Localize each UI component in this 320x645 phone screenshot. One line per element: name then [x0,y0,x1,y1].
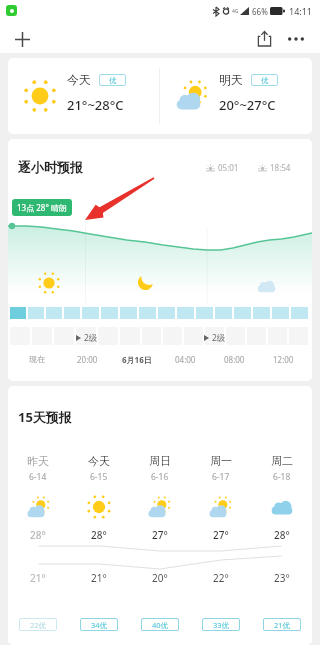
staticText: 22° [213,571,229,585]
staticText: 14:11 [289,5,313,17]
button[interactable]: Add city [9,26,35,52]
button[interactable]: Share [251,25,277,51]
staticText: 28° [91,528,107,542]
staticText: 6-17 [212,471,230,483]
staticText: 明天 [219,72,243,87]
staticText: 2级 [212,332,226,344]
staticText: 21°~28°C [67,96,124,114]
staticText: 6-15 [90,471,108,483]
staticText: 22优 [30,620,47,630]
staticText: 逐小时预报 [18,159,83,175]
button[interactable]: More options [283,26,309,52]
staticText: 6-18 [273,471,291,483]
staticText: 4G [232,8,239,15]
staticText: 20:00 [77,354,98,365]
staticText: 28° [274,528,290,542]
staticText: 6月16日 [122,354,152,365]
staticText: 21° [30,571,46,585]
button[interactable]: 昨天 [8,454,68,483]
staticText: 33优 [213,620,230,630]
staticText: 21° [91,571,107,585]
staticText: 05:01 [218,162,239,173]
staticText: 21优 [274,620,291,630]
staticText: 周日 [149,454,171,468]
staticText: 现在 [29,354,45,364]
button[interactable]: 周二 [251,454,312,483]
staticText: 优 [109,76,117,85]
staticText: 18:54 [270,162,291,173]
staticText: 40优 [152,620,169,630]
staticText: 23° [274,571,290,585]
staticText: 6-16 [151,471,169,483]
staticText: 66% [252,6,268,17]
staticText: 周二 [271,454,293,468]
button[interactable]: 今天 [8,58,159,134]
staticText: 08:00 [224,354,245,365]
staticText: 周一 [210,454,232,468]
staticText: 昨天 [27,454,49,468]
staticText: 15天预报 [18,408,72,426]
button[interactable]: 周一 [190,454,251,483]
staticText: 20°~27°C [219,96,276,114]
staticText: 2级 [84,332,98,344]
staticText: 20° [152,571,168,585]
button[interactable]: 今天 [68,454,129,483]
staticText: 优 [261,76,269,85]
button[interactable]: 周日 [129,454,190,483]
staticText: 34优 [91,620,108,630]
staticText: 27° [152,528,168,542]
staticText: 今天 [67,72,91,87]
staticText: 04:00 [175,354,196,365]
staticText: 6-14 [29,471,47,483]
staticText: 28° [30,528,46,542]
staticText: 今天 [88,454,110,468]
button[interactable]: 明天 [160,58,312,134]
staticText: 12:00 [273,354,294,365]
staticText: 13点 28° 晴朗 [17,202,67,213]
staticText: 27° [213,528,229,542]
